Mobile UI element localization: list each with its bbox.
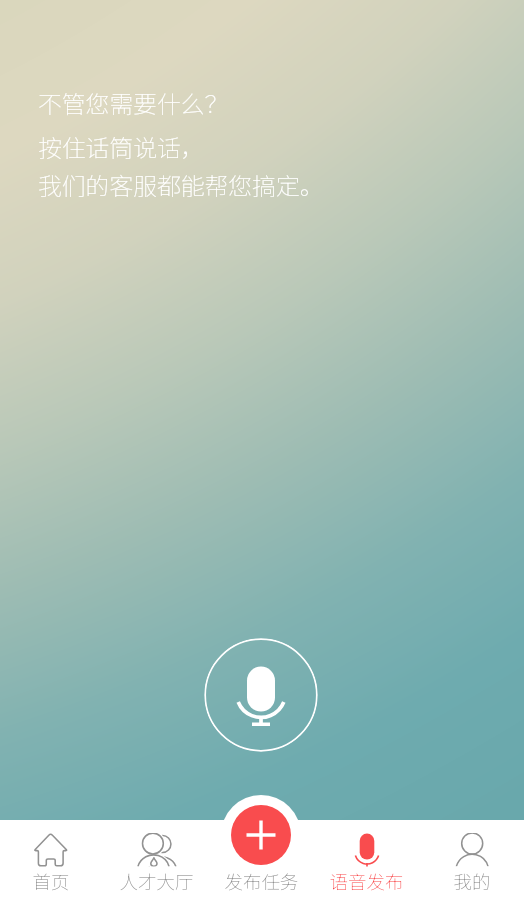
staticText: 按住话筒说话， [38, 129, 205, 163]
button[interactable]: 我的 [419, 820, 524, 897]
button[interactable]: 发布任务 [231, 805, 291, 865]
staticText: 首页 [32, 868, 70, 895]
button[interactable]: 首页 [0, 820, 103, 897]
staticText: 我的 [453, 868, 491, 895]
button[interactable]: 语音发布 [314, 820, 419, 897]
button[interactable]: 按住话筒说话 [204, 638, 318, 752]
staticText: 不管您需要什么？ [38, 85, 229, 119]
button[interactable]: 发布任务 [209, 820, 314, 897]
staticText: 发布任务 [224, 868, 299, 895]
button[interactable]: 人才大厅 [104, 820, 209, 897]
staticText: 我们的客服都能帮您搞定。 [38, 167, 324, 201]
staticText: 语音发布 [329, 868, 404, 895]
staticText: 人才大厅 [119, 868, 194, 895]
